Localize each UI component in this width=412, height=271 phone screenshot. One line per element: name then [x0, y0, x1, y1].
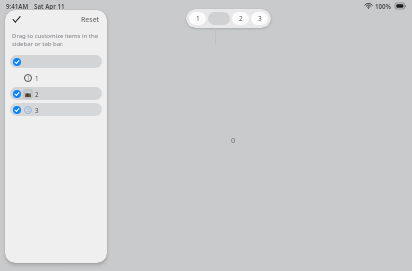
staticText: 100% [375, 2, 392, 10]
button[interactable]: 3 [251, 12, 268, 25]
button[interactable]: Reset [79, 14, 102, 26]
staticText: 9:41AM [6, 2, 29, 10]
staticText: 1 [27, 75, 30, 81]
button[interactable] [10, 55, 102, 68]
staticText: 3 [258, 14, 262, 23]
staticText: 0 [231, 135, 236, 145]
button[interactable]: Done [10, 13, 23, 26]
staticText: 1 [35, 74, 39, 82]
staticText: Reset [81, 15, 100, 25]
staticText: 2 [239, 14, 243, 23]
button[interactable]: 3 [10, 103, 102, 116]
staticText: Sat Apr 11 [34, 2, 65, 10]
button[interactable]: 1 [10, 71, 102, 84]
staticText: 3 [35, 106, 39, 114]
staticText: 1 [196, 14, 200, 23]
button[interactable]: 2 [232, 12, 249, 25]
button[interactable]: 1 [189, 12, 206, 25]
button[interactable]: 2 [10, 87, 102, 100]
button[interactable]: Dragging tab placeholder [208, 12, 230, 25]
staticText: 2 [35, 90, 39, 98]
staticText: Drag to customize items in the sidebar o… [12, 32, 100, 48]
staticText: 3 [27, 107, 30, 113]
